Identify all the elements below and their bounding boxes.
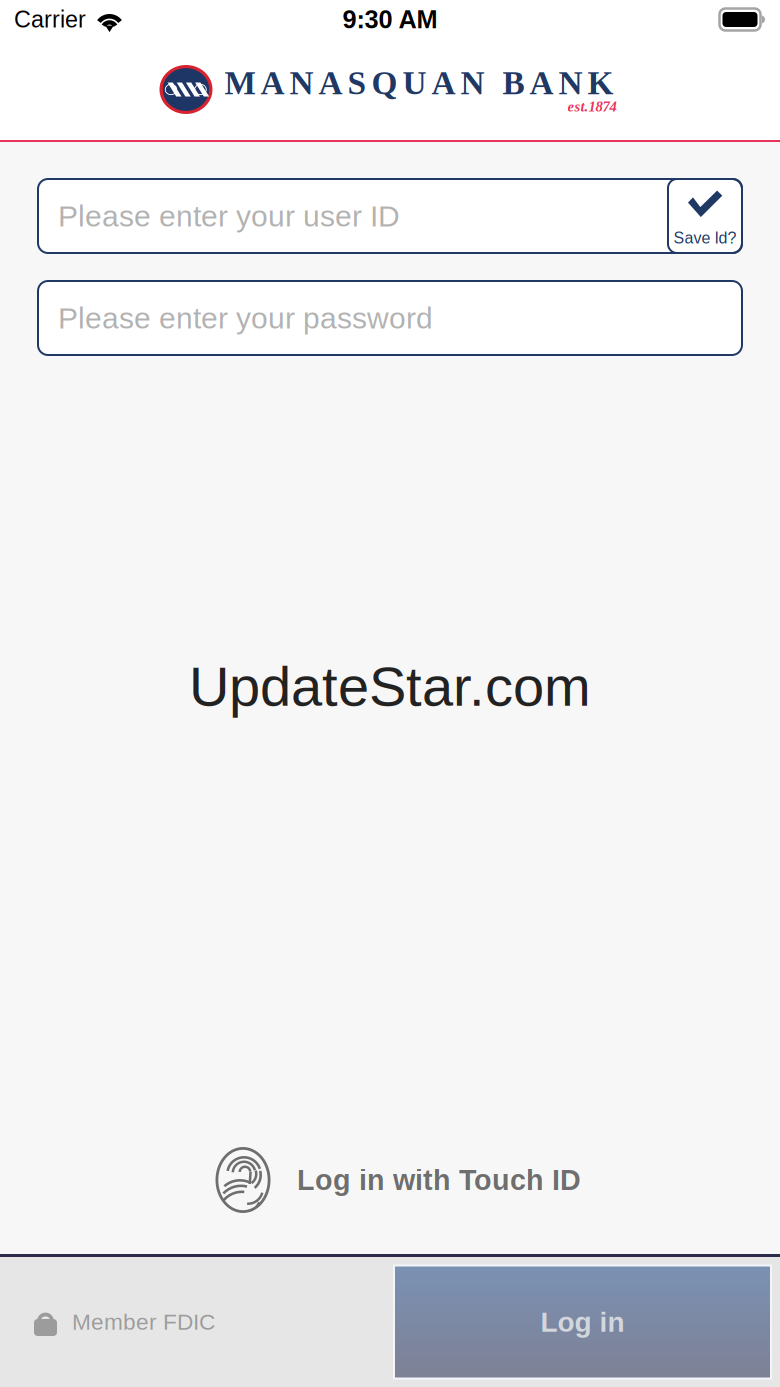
staticText: Please enter your password [58, 301, 433, 335]
button[interactable]: Save Id? [668, 179, 742, 253]
staticText: est.1874 [567, 98, 616, 114]
staticText: Member FDIC [72, 1309, 215, 1335]
button[interactable]: Log in [393, 1264, 772, 1379]
staticText: UpdateStar.com [189, 655, 591, 718]
staticText: 9:30 AM [342, 5, 437, 34]
staticText: Log in with Touch ID [297, 1164, 581, 1196]
staticText: Save Id? [673, 229, 736, 247]
staticText: MANASQUAN BANK [224, 64, 613, 101]
staticText: Carrier [14, 6, 86, 33]
staticText: Please enter your user ID [58, 199, 400, 233]
button[interactable]: Log in with Touch ID [199, 1146, 581, 1214]
staticText: Log in [540, 1306, 624, 1338]
